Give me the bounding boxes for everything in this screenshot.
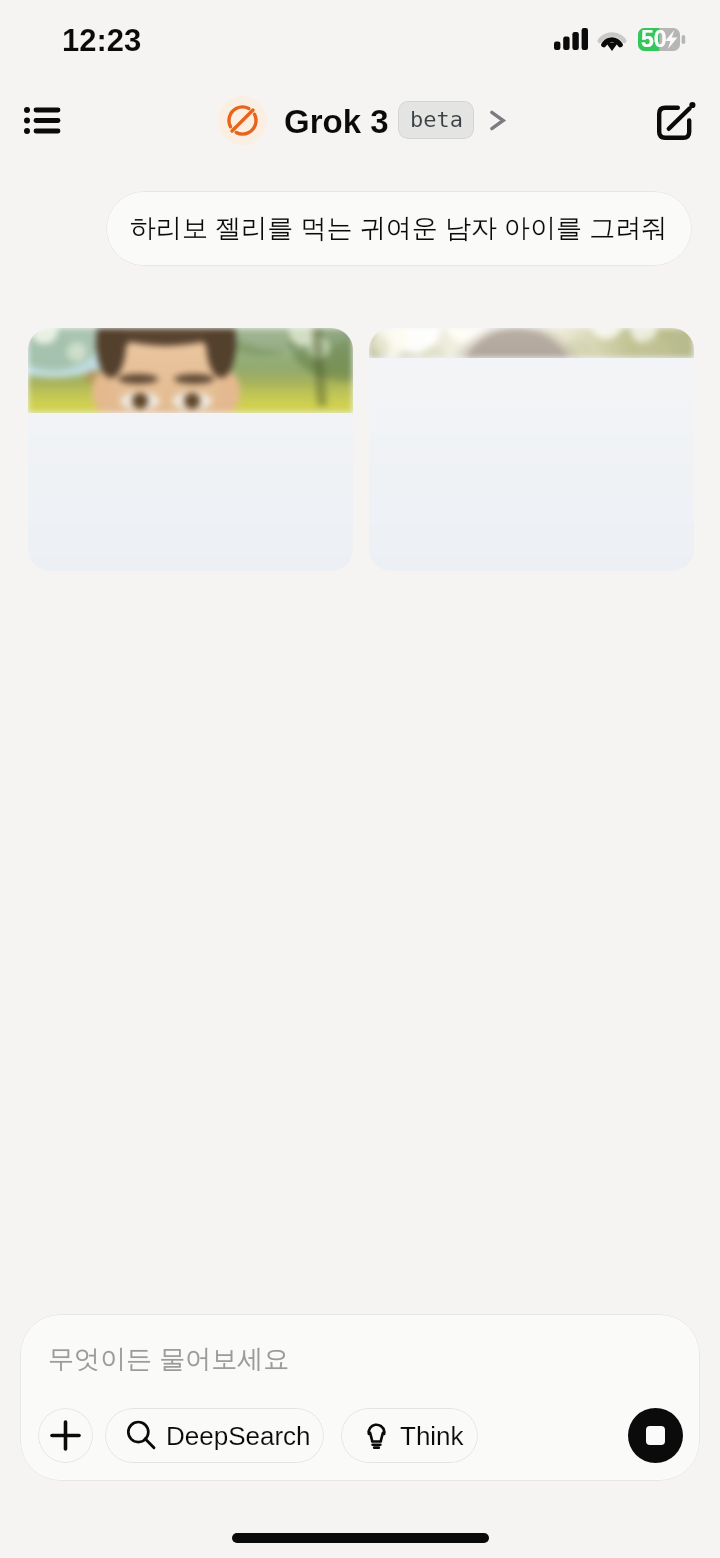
button[interactable]: New chat: [644, 89, 708, 153]
button[interactable]: Generated image: [369, 328, 694, 571]
staticText: 50: [641, 26, 667, 52]
staticText: beta: [410, 107, 463, 133]
button[interactable]: DeepSearch: [105, 1408, 324, 1463]
staticText: 하리보 젤리를 먹는 귀여운 남자 아이를 그려줘: [130, 212, 668, 245]
staticText: 12:23: [62, 23, 142, 58]
staticText: 무엇이든 물어보세요: [48, 1343, 290, 1376]
button[interactable]: Generated image: [28, 328, 353, 571]
button[interactable]: Chat history: [9, 88, 73, 152]
button[interactable]: Stop generating: [628, 1408, 683, 1463]
button[interactable]: Add attachment: [38, 1408, 93, 1463]
button[interactable]: 하리보 젤리를 먹는 귀여운 남자 아이를 그려줘: [106, 191, 692, 266]
staticText: Grok 3: [284, 103, 389, 140]
button[interactable]: Grok 3 beta, change model: [214, 93, 514, 149]
staticText: DeepSearch: [166, 1421, 311, 1450]
button[interactable]: Think: [341, 1408, 478, 1463]
staticText: Think: [400, 1421, 464, 1450]
